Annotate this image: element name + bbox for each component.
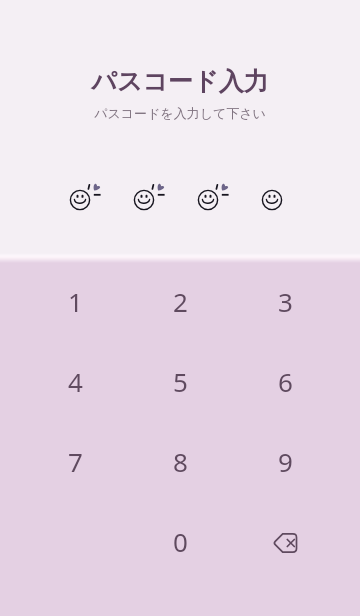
button[interactable]: Backspace [240, 504, 330, 578]
button[interactable]: 9 [240, 424, 330, 498]
staticText: パスコード入力 [0, 66, 360, 97]
staticText: 2 [173, 284, 188, 319]
staticText: パスコードを入力して下さい [0, 105, 360, 121]
button[interactable]: 1 [30, 264, 120, 338]
button[interactable]: 7 [30, 424, 120, 498]
staticText: 4 [68, 364, 83, 399]
button[interactable]: 2 [135, 264, 225, 338]
staticText: 0 [173, 524, 188, 559]
staticText: 7 [68, 444, 83, 479]
staticText: 8 [173, 444, 188, 479]
staticText: 5 [173, 364, 188, 399]
staticText: 1 [68, 284, 83, 319]
button[interactable]: 8 [135, 424, 225, 498]
button[interactable]: 6 [240, 344, 330, 418]
button[interactable]: 5 [135, 344, 225, 418]
button[interactable]: 4 [30, 344, 120, 418]
staticText: 6 [278, 364, 293, 399]
button[interactable]: 3 [240, 264, 330, 338]
button[interactable]: 0 [135, 504, 225, 578]
staticText: 9 [278, 444, 293, 479]
staticText: 3 [278, 284, 293, 319]
